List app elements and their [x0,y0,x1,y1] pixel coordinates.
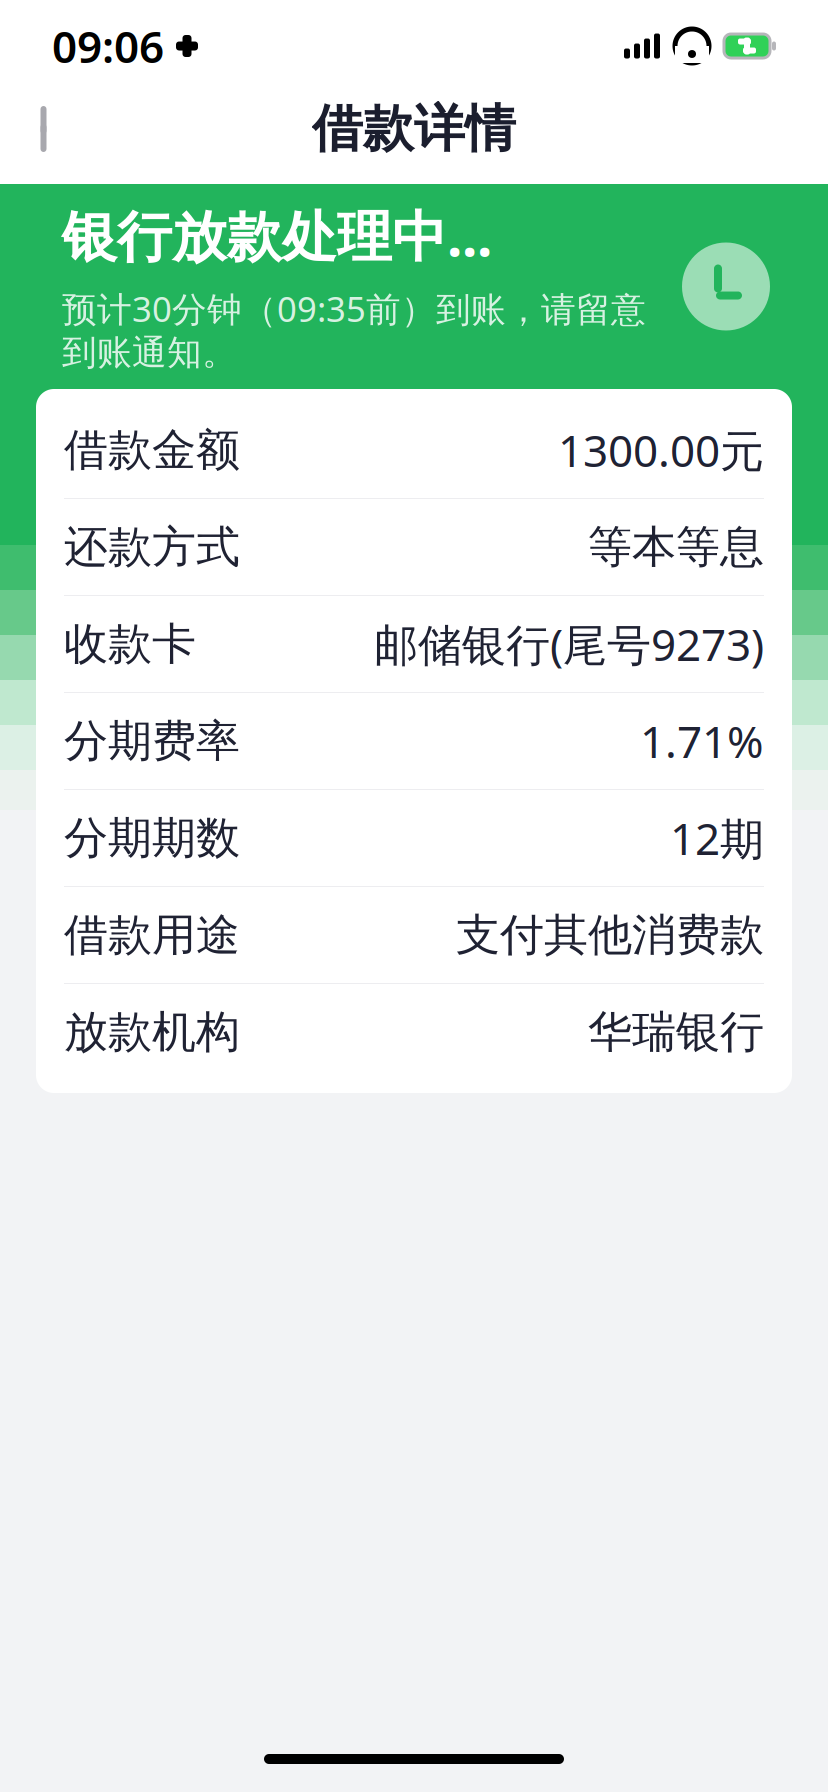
staticText: 支付其他消费款 [456,908,764,962]
staticText: 预计30分钟（09:35前）到账，请留意到账通知。 [62,285,646,374]
staticText: 分期费率 [64,714,240,768]
staticText: 借款用途 [64,908,240,962]
staticText: 12期 [670,809,764,867]
staticText: 放款机构 [64,1005,240,1059]
staticText: 借款详情 [312,98,516,160]
staticText: 分期期数 [64,811,240,865]
staticText: 还款方式 [64,520,240,574]
staticText: 1300.00元 [558,421,764,479]
staticText: 借款金额 [64,423,240,477]
button[interactable]: 返回 [0,92,96,166]
staticText: 等本等息 [588,520,764,574]
staticText: 09:06 [52,17,164,75]
staticText: 华瑞银行 [588,1005,764,1059]
staticText: 收款卡 [64,617,196,671]
staticText: 1.71% [640,712,764,770]
staticText: 银行放款处理中... [62,199,492,271]
staticText: 邮储银行(尾号9273) [374,615,764,673]
